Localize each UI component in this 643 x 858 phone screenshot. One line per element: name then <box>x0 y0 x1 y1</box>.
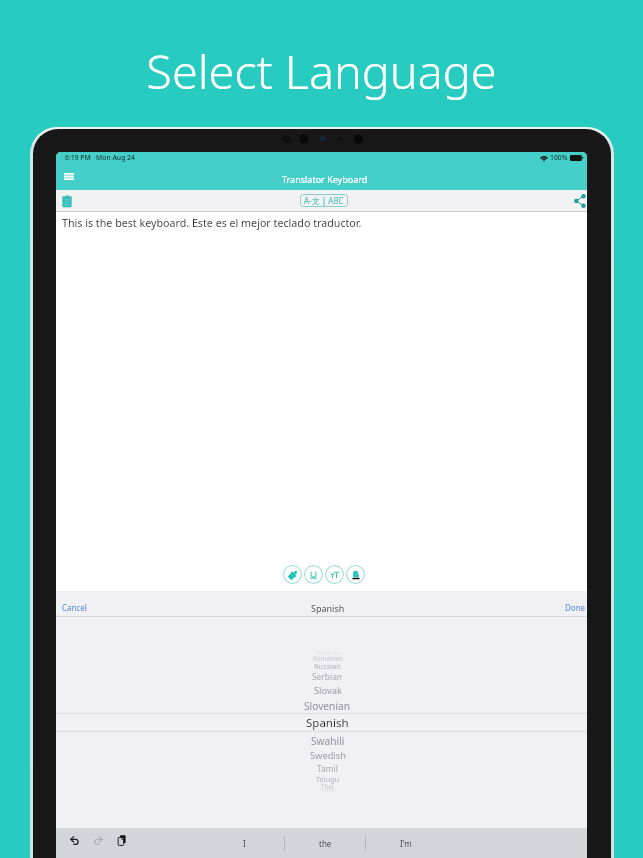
button[interactable]: Telugu <box>56 774 587 784</box>
button[interactable]: Swedish <box>56 749 587 762</box>
staticText: Telugu <box>316 774 340 784</box>
staticText: 6:19 PM <box>65 153 91 162</box>
button[interactable]: Cancel <box>56 602 93 613</box>
staticText: the <box>319 838 332 849</box>
staticText: Turkish <box>319 787 337 794</box>
button[interactable]: Russian <box>56 661 587 671</box>
button[interactable]: Swahili <box>56 734 587 748</box>
staticText: Done <box>565 602 586 613</box>
staticText: Serbian <box>312 671 343 682</box>
staticText: Romanian <box>313 654 343 662</box>
button[interactable]: Underline <box>304 565 323 584</box>
staticText: Select Language <box>0 39 643 103</box>
staticText: Spanish <box>311 602 345 614</box>
staticText: Slovak <box>314 684 342 697</box>
button[interactable]: Tamil <box>56 763 587 774</box>
staticText: Mon Aug 24 <box>96 153 135 162</box>
button[interactable]: Redo <box>91 833 106 848</box>
staticText: I'm <box>400 838 412 849</box>
button[interactable]: Serbian <box>56 671 587 682</box>
button[interactable]: A-文 | ABC <box>300 194 348 207</box>
button[interactable]: Romanian <box>56 654 587 662</box>
button[interactable]: Undo <box>67 833 82 848</box>
button[interactable]: Text size <box>325 565 344 584</box>
staticText: Slovenian <box>304 699 351 713</box>
staticText: Swahili <box>311 734 345 748</box>
staticText: Russian <box>314 661 341 671</box>
button[interactable]: Paste <box>114 833 129 848</box>
button[interactable]: Share <box>572 192 587 209</box>
staticText: This is the best keyboard. Este es el me… <box>62 216 362 231</box>
button[interactable]: Spanish <box>56 714 587 731</box>
button[interactable]: Slovak <box>56 684 587 697</box>
button[interactable]: the <box>284 828 366 858</box>
button[interactable]: Clear text <box>58 192 76 210</box>
staticText: Romanian <box>316 650 340 657</box>
button[interactable]: Navigation menu <box>60 167 78 185</box>
button[interactable]: Done <box>559 602 587 613</box>
staticText: Swedish <box>310 749 346 762</box>
staticText: Spanish <box>306 715 349 731</box>
staticText: Tamil <box>317 763 338 774</box>
staticText: Translator Keyboard <box>282 173 368 185</box>
staticText: 100% <box>550 153 568 162</box>
staticText: Cancel <box>62 602 87 613</box>
button[interactable]: I <box>203 828 285 858</box>
button[interactable]: Slovenian <box>56 699 587 713</box>
button[interactable]: Brush <box>283 565 302 584</box>
staticText: A-文 | ABC <box>304 195 344 206</box>
button[interactable]: I'm <box>365 828 447 858</box>
staticText: I <box>243 838 246 849</box>
staticText: Thai <box>321 782 334 790</box>
button[interactable]: Speak <box>346 565 365 584</box>
